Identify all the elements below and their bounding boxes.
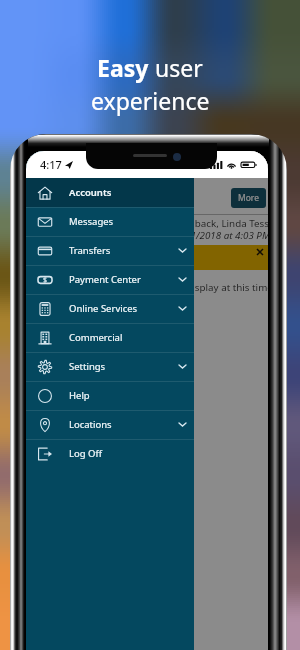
staticText: experience bbox=[91, 85, 210, 116]
staticText: Online Services bbox=[69, 302, 138, 315]
staticText: Easy bbox=[97, 52, 155, 83]
staticText: Messages bbox=[69, 215, 114, 228]
staticText: No alerts to display at this time. bbox=[130, 281, 268, 294]
button[interactable]: Locations bbox=[26, 410, 194, 439]
button[interactable]: Payment Center bbox=[26, 265, 194, 294]
staticText: 11/01/2018 at 4:03 PM bbox=[171, 229, 268, 242]
button[interactable]: Accounts bbox=[26, 178, 194, 207]
staticText: Locations bbox=[69, 418, 112, 431]
button[interactable]: Commercial bbox=[26, 323, 194, 352]
staticText: 4:17 bbox=[40, 157, 62, 172]
staticText: Log Off bbox=[69, 447, 102, 460]
staticText: Payment Center bbox=[69, 273, 141, 286]
button[interactable]: Log Off bbox=[26, 439, 194, 468]
staticText: More bbox=[238, 192, 259, 204]
button[interactable]: Help bbox=[26, 381, 194, 410]
button[interactable]: Settings bbox=[26, 352, 194, 381]
staticText: Welcome back, Linda Tess bbox=[150, 217, 268, 230]
staticText: user bbox=[155, 52, 203, 83]
button[interactable]: Transfers bbox=[26, 236, 194, 265]
button[interactable]: Messages bbox=[26, 207, 194, 236]
staticText: Settings bbox=[69, 360, 106, 373]
other: Dismiss alert bbox=[257, 249, 263, 255]
staticText: Accounts bbox=[69, 186, 112, 199]
staticText: Help bbox=[69, 389, 90, 402]
button[interactable]: More bbox=[231, 188, 266, 208]
button[interactable]: Online Services bbox=[26, 294, 194, 323]
staticText: Commercial bbox=[69, 331, 123, 344]
staticText: Transfers bbox=[69, 244, 111, 257]
